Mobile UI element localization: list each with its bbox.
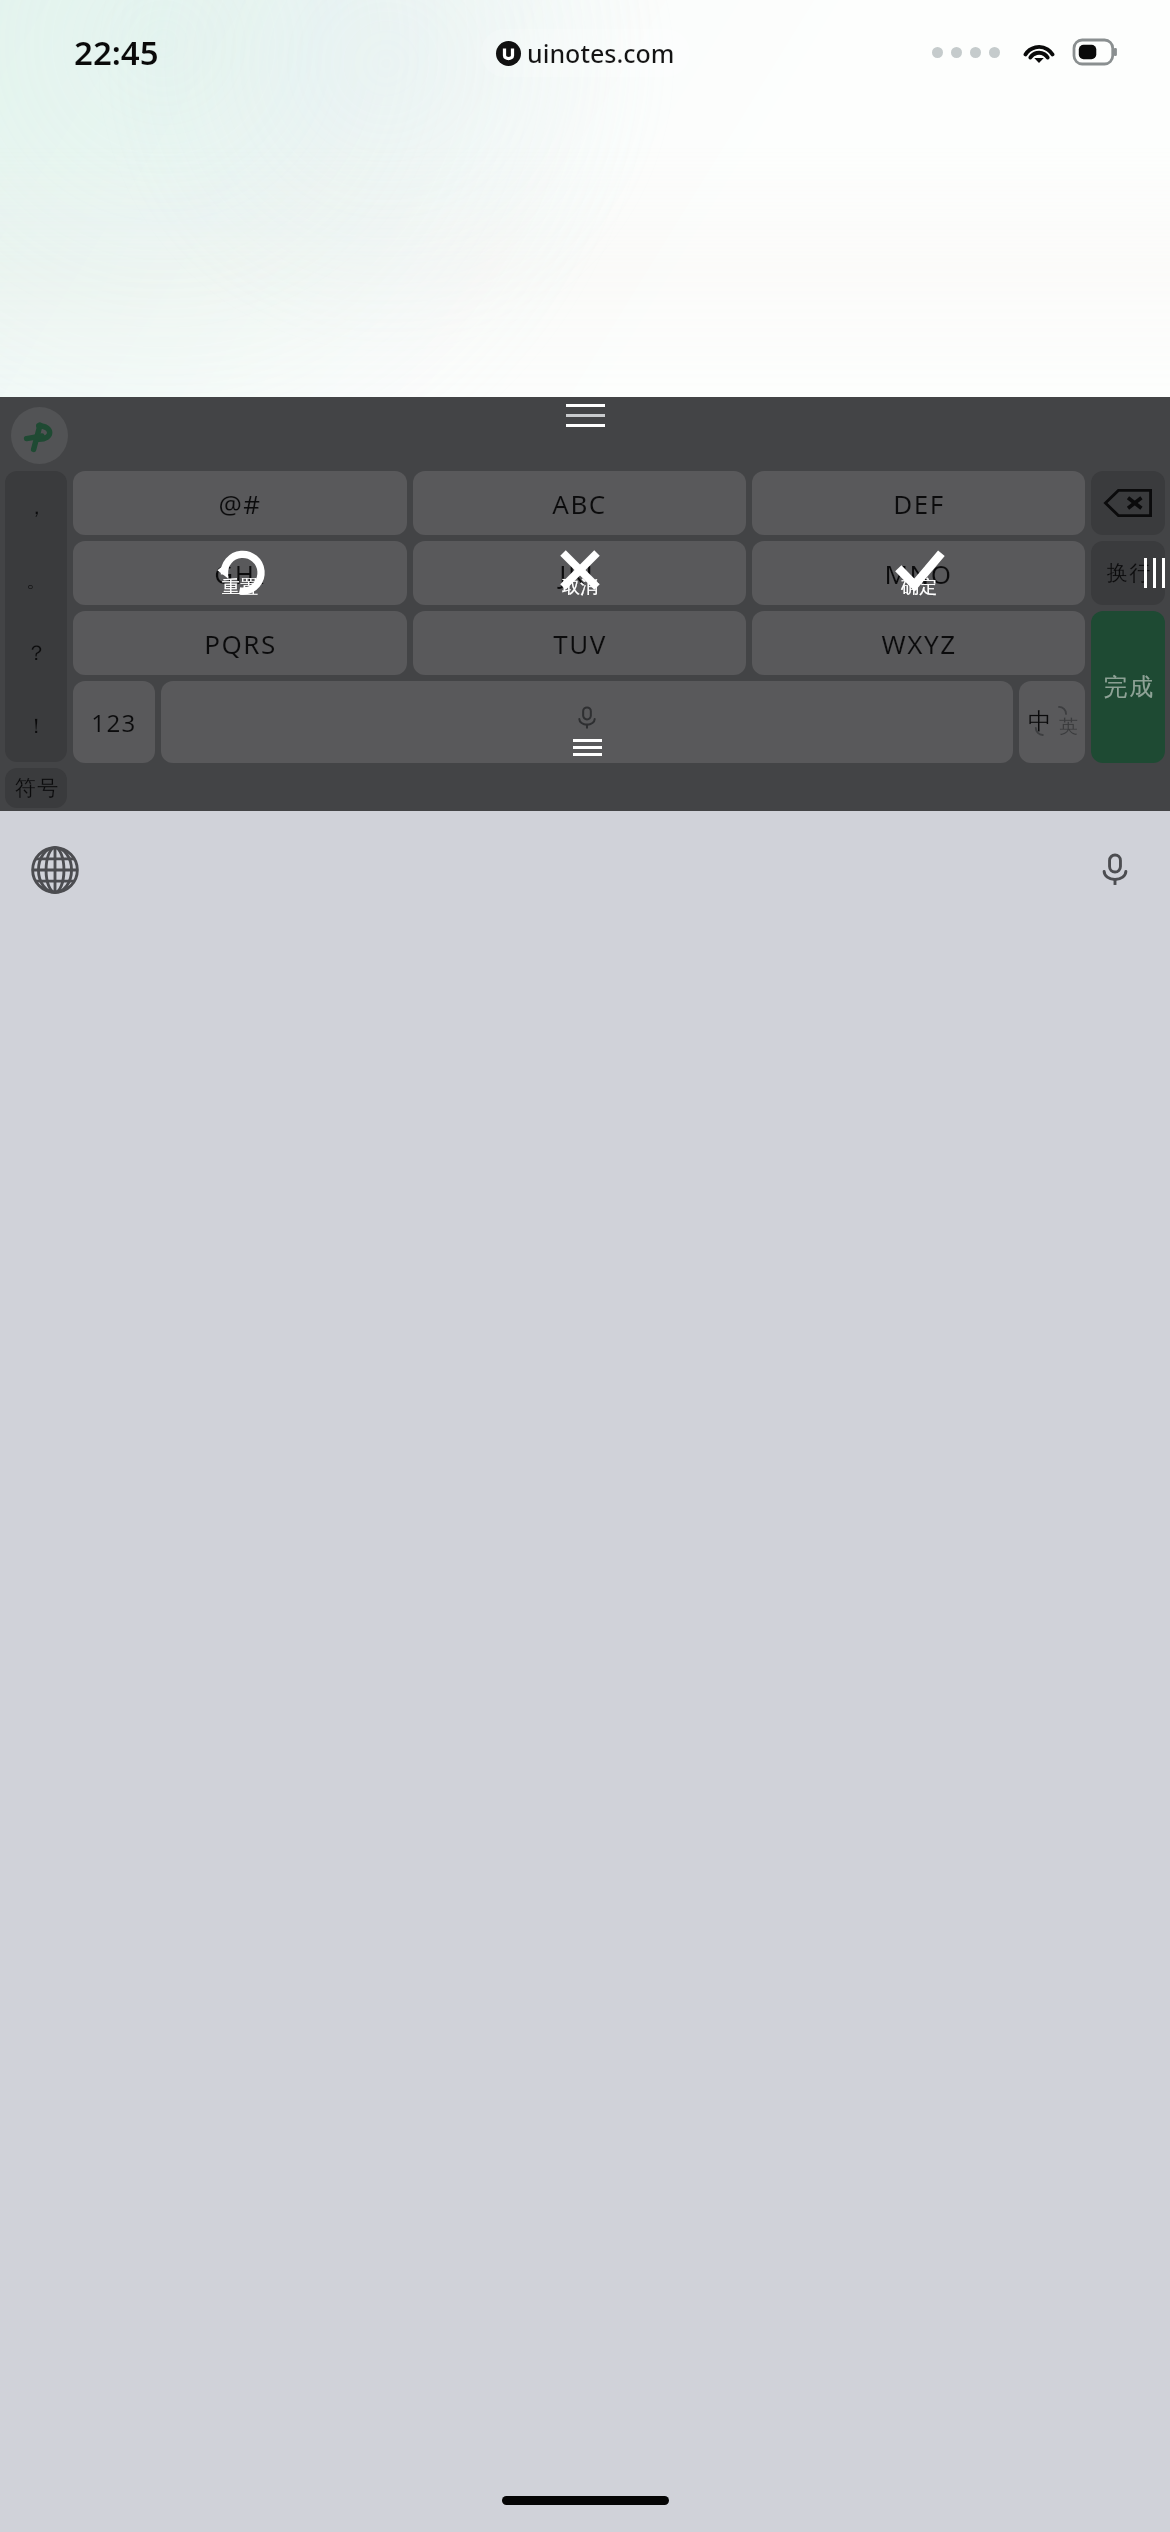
- button[interactable]: Space: [161, 681, 1013, 763]
- staticText: PQRS: [204, 626, 277, 661]
- button[interactable]: 123: [73, 681, 155, 763]
- staticText: 123: [91, 706, 137, 739]
- staticText: DEF: [893, 486, 945, 521]
- staticText: 22:45: [74, 30, 159, 75]
- staticText: 完成: [1103, 672, 1154, 702]
- staticText: @#: [218, 486, 262, 521]
- button[interactable]: Voice input: [1082, 837, 1148, 903]
- staticText: MNO: [884, 556, 953, 591]
- button[interactable]: Delete: [1091, 471, 1165, 535]
- button[interactable]: JKL: [413, 541, 746, 605]
- button[interactable]: @#: [73, 471, 407, 535]
- staticText: 重置: [222, 576, 258, 599]
- button[interactable]: Chinese English toggle: [1019, 681, 1085, 763]
- staticText: 符号: [14, 775, 59, 801]
- button[interactable]: 取消: [410, 538, 749, 608]
- button[interactable]: 完成: [1091, 611, 1165, 763]
- button[interactable]: DEF: [752, 471, 1085, 535]
- button[interactable]: 符号: [5, 768, 67, 808]
- button[interactable]: App logo: [11, 407, 68, 464]
- staticText: uinotes.com: [527, 36, 675, 70]
- staticText: TUV: [553, 626, 607, 661]
- button[interactable]: MNO: [752, 541, 1085, 605]
- button[interactable]: 换行: [1091, 541, 1165, 605]
- staticText: 换行: [1106, 560, 1151, 586]
- staticText: JKL: [559, 556, 601, 591]
- staticText: 取消: [562, 576, 598, 599]
- staticText: WXYZ: [881, 626, 957, 661]
- staticText: ，: [26, 494, 47, 520]
- button[interactable]: 确定: [749, 538, 1088, 608]
- staticText: GHI: [214, 556, 266, 591]
- staticText: ABC: [552, 486, 607, 521]
- button[interactable]: PQRS: [73, 611, 407, 675]
- staticText: ？: [26, 640, 47, 666]
- button[interactable]: ABC: [413, 471, 746, 535]
- staticText: 英: [1059, 715, 1078, 739]
- button[interactable]: TUV: [413, 611, 746, 675]
- button[interactable]: Change language: [22, 837, 88, 903]
- staticText: 。: [26, 567, 47, 593]
- staticText: ！: [26, 713, 47, 739]
- button[interactable]: WXYZ: [752, 611, 1085, 675]
- staticText: 确定: [901, 576, 937, 599]
- staticText: 中: [1028, 707, 1051, 736]
- button[interactable]: GHI: [73, 541, 407, 605]
- button[interactable]: 重置: [70, 538, 410, 608]
